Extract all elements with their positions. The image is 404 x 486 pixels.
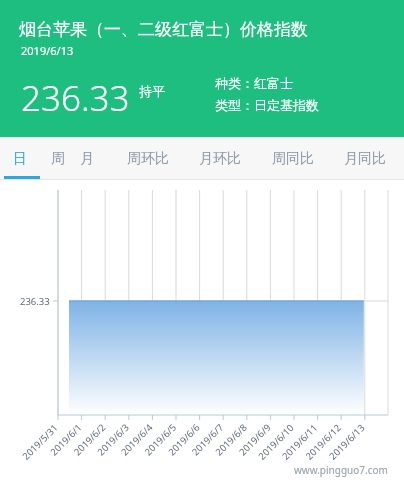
- button[interactable]: 周同比: [262, 137, 324, 180]
- button[interactable]: 月同比: [334, 137, 396, 180]
- staticText: 月: [80, 150, 94, 168]
- button[interactable]: 日: [4, 137, 36, 180]
- staticText: 月环比: [199, 150, 241, 168]
- button[interactable]: 周环比: [117, 137, 179, 180]
- staticText: 种类：红富士: [215, 75, 293, 91]
- button[interactable]: 月: [71, 137, 103, 180]
- staticText: 236.33: [21, 74, 130, 122]
- staticText: 持平: [139, 83, 165, 99]
- button[interactable]: 周: [42, 137, 74, 180]
- staticText: 类型：日定基指数: [215, 97, 319, 113]
- staticText: 周同比: [272, 150, 314, 168]
- staticText: 烟台苹果（一、二级红富士）价格指数: [19, 19, 308, 40]
- staticText: 月同比: [344, 150, 386, 168]
- staticText: 周环比: [127, 150, 169, 168]
- button[interactable]: 月环比: [189, 137, 251, 180]
- staticText: 日: [13, 150, 27, 168]
- staticText: 周: [51, 150, 65, 168]
- staticText: 2019/6/13: [21, 43, 74, 58]
